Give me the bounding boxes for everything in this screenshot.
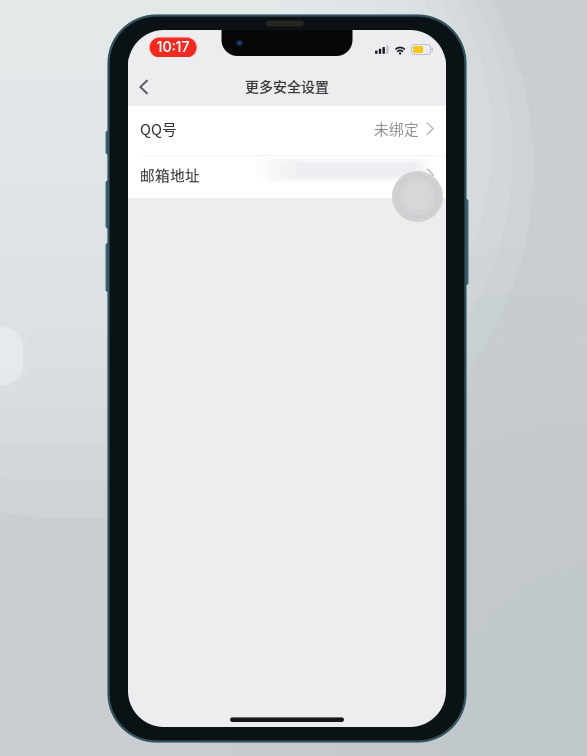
button[interactable]: QQ号 <box>128 106 446 155</box>
staticText: 邮箱地址 <box>140 164 200 185</box>
staticText: 10:17 <box>157 38 190 55</box>
button[interactable]: 邮箱地址 <box>128 156 446 198</box>
staticText: QQ号 <box>140 118 177 139</box>
staticText: 未绑定 <box>374 118 419 139</box>
button[interactable]: Back <box>129 68 159 106</box>
staticText: 更多安全设置 <box>245 76 329 96</box>
